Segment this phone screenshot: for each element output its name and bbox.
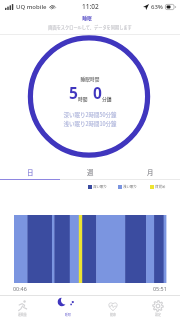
staticText: 浅い眠り2時間10分鐘 xyxy=(0,120,180,128)
staticText: 目覚め xyxy=(155,184,166,189)
staticText: 5 xyxy=(69,82,78,103)
button[interactable]: 日 xyxy=(0,165,60,180)
other: 睡眠 xyxy=(62,300,74,312)
staticText: 00:46 xyxy=(13,285,27,292)
staticText: 深い眠り xyxy=(93,184,107,189)
button[interactable]: 健康 xyxy=(90,296,135,320)
staticText: 深い眠り2時間50分鐘 xyxy=(0,111,180,119)
staticText: 0 xyxy=(93,82,102,103)
other: 設定 xyxy=(152,300,164,312)
button[interactable]: 月 xyxy=(120,165,180,180)
staticText: 月 xyxy=(147,168,154,177)
button[interactable]: 睡眠 xyxy=(45,296,90,320)
staticText: 週 xyxy=(87,168,94,177)
other: 健康 xyxy=(107,300,119,312)
staticText: 11:02 xyxy=(82,2,99,11)
staticText: 浅い眠り xyxy=(123,184,137,189)
staticText: 05:51 xyxy=(153,285,167,292)
staticText: 睡眠時間 xyxy=(0,76,180,83)
other: 運動量 xyxy=(17,300,29,312)
staticText: 睡眠 xyxy=(0,14,177,21)
button[interactable]: 週 xyxy=(60,165,120,180)
button[interactable]: 設定 xyxy=(135,296,180,320)
staticText: 分鐘 xyxy=(102,95,112,102)
staticText: 運動量 xyxy=(18,313,27,317)
staticText: UQ mobile xyxy=(16,3,47,11)
staticText: 時間 xyxy=(78,95,88,102)
button[interactable]: 運動量 xyxy=(0,296,45,320)
staticText: 睡眠 xyxy=(65,313,71,317)
staticText: 健康 xyxy=(110,313,116,317)
staticText: 日 xyxy=(27,168,34,177)
staticText: 画面をスクロールして、データを同期します xyxy=(0,24,180,30)
staticText: 63% xyxy=(151,3,163,11)
staticText: 設定 xyxy=(155,313,161,317)
